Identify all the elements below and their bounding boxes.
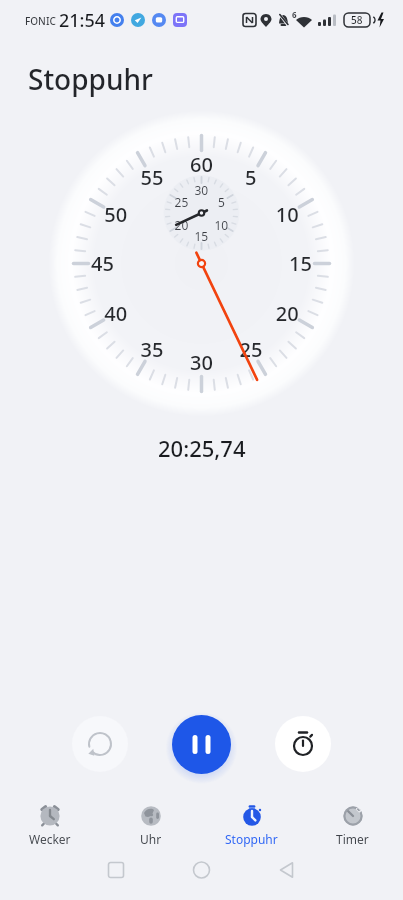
- staticText: Uhr: [140, 831, 162, 847]
- staticText: Wecker: [29, 831, 71, 847]
- button[interactable]: Wecker: [0, 798, 100, 847]
- button[interactable]: Uhr: [100, 798, 201, 847]
- button[interactable]: [72, 716, 128, 772]
- button[interactable]: Timer: [302, 798, 403, 847]
- staticText: Timer: [336, 831, 369, 847]
- staticText: Stoppuhr: [28, 60, 153, 98]
- button[interactable]: Stoppuhr: [201, 798, 302, 847]
- button[interactable]: [275, 716, 331, 772]
- staticText: 20:25,74: [158, 433, 246, 463]
- button[interactable]: [172, 715, 231, 774]
- staticText: FONIC: [25, 14, 56, 28]
- staticText: Stoppuhr: [225, 831, 278, 847]
- staticText: 21:54: [59, 8, 106, 33]
